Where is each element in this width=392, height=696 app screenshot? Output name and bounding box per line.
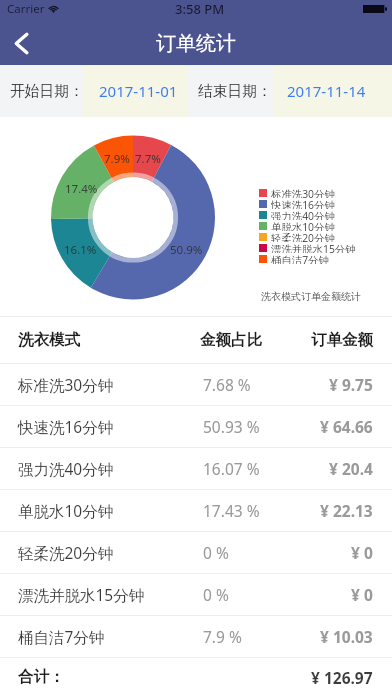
staticText: 轻柔洗20分钟 (18, 542, 114, 563)
staticText: ¥ 64.66 (320, 416, 373, 437)
staticText: 16.1% (64, 242, 97, 258)
staticText: 桶自洁7分钟 (18, 626, 105, 647)
staticText: 结束日期： (198, 82, 272, 101)
button[interactable]: 标准洗30分钟 (0, 364, 392, 405)
staticText: ¥ 0 (351, 542, 373, 563)
staticText: 轻柔洗20分钟 (271, 231, 335, 242)
staticText: 3:58 PM (175, 0, 225, 18)
staticText: 订单金额 (311, 330, 373, 350)
staticText: 2017-11-01 (99, 81, 178, 101)
staticText: 16.07 % (203, 458, 260, 479)
button[interactable]: 单脱水10分钟 (0, 490, 392, 531)
staticText: 快速洗16分钟 (18, 416, 114, 437)
staticText: 快速洗16分钟 (271, 198, 335, 209)
button[interactable]: 强力洗40分钟 (0, 448, 392, 489)
button[interactable]: 快速洗16分钟 (0, 406, 392, 447)
staticText: 0 % (203, 542, 229, 563)
staticText: 7.7% (135, 151, 161, 167)
staticText: 标准洗30分钟 (18, 374, 114, 395)
staticText: 强力洗40分钟 (18, 458, 114, 479)
staticText: 50.93 % (203, 416, 260, 437)
staticText: 洗衣模式 (18, 330, 80, 350)
staticText: 17.43 % (203, 500, 260, 521)
staticText: 洗衣模式订单金额统计 (261, 290, 361, 303)
staticText: 金额占比 (200, 330, 262, 350)
button[interactable]: 2017-11-14 (273, 65, 392, 117)
button[interactable]: 桶自洁7分钟 (0, 616, 392, 657)
staticText: ¥ 20.4 (329, 458, 373, 479)
staticText: 单脱水10分钟 (18, 500, 114, 521)
staticText: 强力洗40分钟 (271, 209, 335, 220)
staticText: Carrier (7, 1, 45, 17)
staticText: 7.9 % (203, 626, 242, 647)
staticText: 单脱水10分钟 (271, 220, 335, 231)
staticText: 订单统计 (156, 31, 236, 56)
button[interactable]: Back (6, 22, 36, 65)
staticText: ¥ 126.97 (311, 667, 373, 688)
staticText: ¥ 22.13 (320, 500, 373, 521)
staticText: 50.9% (170, 242, 203, 258)
staticText: 漂洗并脱水15分钟 (18, 584, 145, 605)
staticText: 标准洗30分钟 (271, 187, 335, 198)
staticText: 2017-11-14 (287, 81, 366, 101)
staticText: ¥ 10.03 (320, 626, 373, 647)
staticText: 0 % (203, 584, 229, 605)
staticText: ¥ 0 (351, 584, 373, 605)
staticText: 漂洗并脱水15分钟 (271, 242, 356, 253)
staticText: ¥ 9.75 (329, 374, 373, 395)
staticText: 17.4% (65, 181, 98, 197)
staticText: 合计： (18, 667, 65, 687)
staticText: 桶自洁7分钟 (271, 253, 329, 264)
staticText: 7.68 % (203, 374, 251, 395)
button[interactable]: 漂洗并脱水15分钟 (0, 574, 392, 615)
staticText: 7.9% (104, 151, 130, 167)
button[interactable]: 轻柔洗20分钟 (0, 532, 392, 573)
staticText: 开始日期： (10, 82, 84, 101)
button[interactable]: 2017-11-01 (83, 65, 188, 117)
